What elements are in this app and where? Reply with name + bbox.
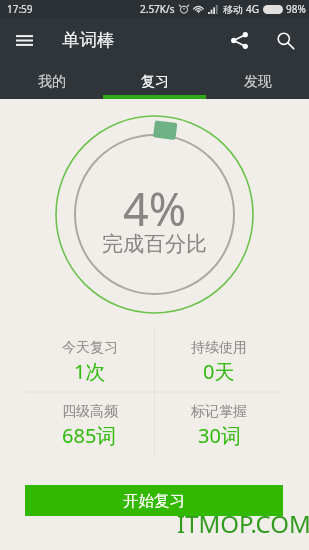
staticText: 标记掌握 (191, 403, 247, 421)
staticText: 我的 (38, 73, 66, 91)
staticText: 今天复习 (62, 339, 118, 357)
button[interactable]: Share (221, 22, 257, 58)
staticText: 开始复习 (123, 491, 185, 511)
button[interactable]: 开始复习 (25, 485, 283, 516)
staticText: 发现 (244, 73, 272, 91)
button[interactable]: 持续使用 (154, 328, 284, 392)
staticText: 4G (246, 2, 259, 16)
button[interactable]: 今天复习 (25, 328, 154, 392)
button[interactable]: Menu (8, 24, 40, 56)
button[interactable]: Search (267, 22, 303, 58)
button[interactable]: 发现 (206, 62, 309, 99)
staticText: 四级高频 (62, 403, 118, 421)
staticText: 完成百分比 (102, 231, 207, 257)
button[interactable]: 复习 (103, 62, 206, 99)
button[interactable]: 标记掌握 (154, 392, 284, 456)
staticText: 0天 (203, 358, 235, 385)
staticText: 98% (286, 2, 306, 16)
staticText: 30词 (198, 422, 241, 449)
button[interactable]: 四级高频 (25, 392, 154, 456)
staticText: 持续使用 (191, 339, 247, 357)
staticText: 1次 (74, 358, 106, 385)
staticText: 17:59 (7, 2, 33, 16)
staticText: 移动 (223, 3, 243, 16)
staticText: ITMOP.COM (177, 507, 309, 540)
staticText: 4% (123, 178, 187, 239)
staticText: 685词 (62, 422, 117, 449)
staticText: 2.57K/s (140, 2, 175, 16)
button[interactable]: 我的 (0, 62, 103, 99)
staticText: 复习 (141, 73, 169, 91)
staticText: 单词棒 (62, 29, 115, 51)
